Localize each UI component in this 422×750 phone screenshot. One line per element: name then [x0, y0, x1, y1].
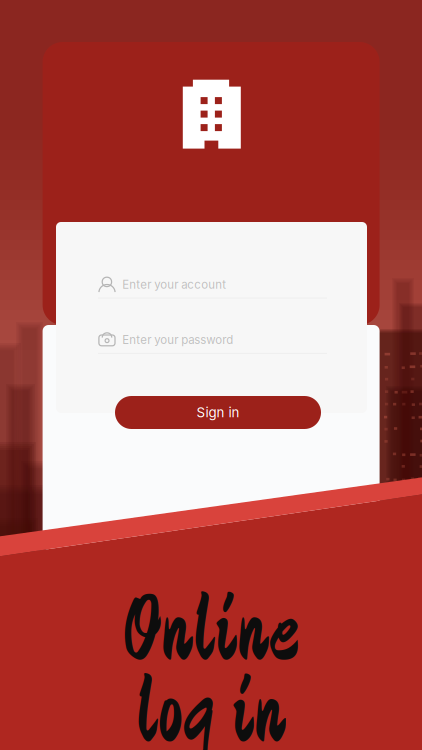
staticText: log in	[136, 666, 286, 750]
button[interactable]: Sign in	[115, 396, 321, 429]
staticText: Online	[122, 584, 300, 675]
staticText: Enter your password	[122, 333, 233, 347]
staticText: Enter your account	[122, 278, 226, 291]
staticText: Sign in	[196, 404, 239, 420]
